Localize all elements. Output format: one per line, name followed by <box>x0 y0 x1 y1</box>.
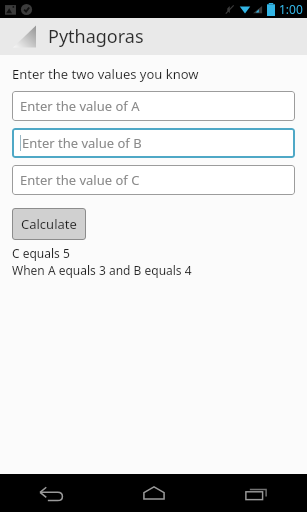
button[interactable]: Back <box>0 474 103 512</box>
button[interactable]: Recent apps <box>205 474 307 512</box>
staticText: C equals 5 <box>12 245 70 261</box>
staticText: Enter the value of C <box>20 171 140 189</box>
button[interactable]: Calculate <box>12 208 86 240</box>
staticText: When A equals 3 and B equals 4 <box>12 262 192 278</box>
staticText: Enter the value of B <box>22 134 142 152</box>
button[interactable]: Enter the value of A <box>12 91 295 121</box>
staticText: Calculate <box>21 215 77 233</box>
button[interactable]: Enter the value of B <box>12 128 295 158</box>
staticText: Enter the two values you know <box>12 65 199 83</box>
button[interactable]: Home <box>103 474 205 512</box>
staticText: Enter the value of A <box>20 97 140 115</box>
staticText: 1:00 <box>279 1 303 17</box>
button[interactable]: Enter the value of C <box>12 165 295 195</box>
staticText: Pythagoras <box>48 24 144 49</box>
